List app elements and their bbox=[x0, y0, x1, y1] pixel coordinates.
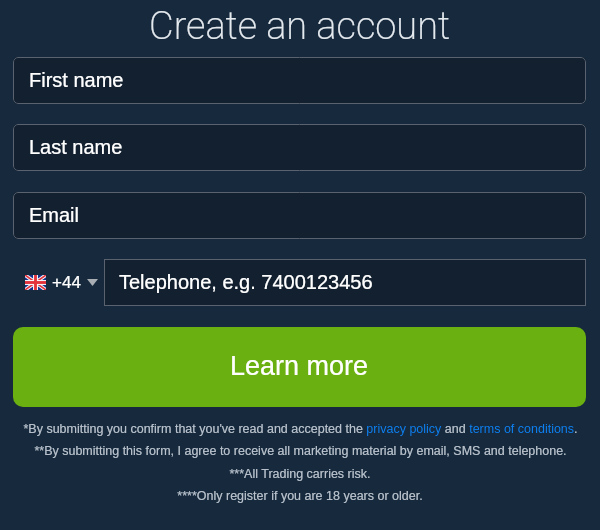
staticText: Telephone, e.g. 7400123456 bbox=[119, 271, 373, 293]
staticText: Email bbox=[29, 204, 80, 226]
staticText: *By submitting you confirm that you've r… bbox=[23, 422, 578, 436]
staticText: ***All Trading carries risk. bbox=[229, 467, 371, 481]
button[interactable]: Telephone, e.g. 7400123456 bbox=[104, 259, 586, 306]
staticText: Last name bbox=[29, 136, 123, 158]
staticText: Learn more bbox=[230, 351, 369, 381]
staticText: First name bbox=[29, 69, 124, 91]
staticText: +44 bbox=[52, 273, 81, 292]
staticText: ****Only register if you are 18 years or… bbox=[177, 489, 423, 503]
button[interactable]: Select country code, United Kingdom +44 bbox=[0, 259, 104, 306]
button[interactable]: Email bbox=[13, 192, 586, 239]
button[interactable]: First name bbox=[13, 57, 586, 104]
staticText: Create an account bbox=[149, 4, 451, 49]
button[interactable]: Last name bbox=[13, 124, 586, 171]
button[interactable]: Learn more bbox=[13, 327, 586, 407]
staticText: **By submitting this form, I agree to re… bbox=[34, 444, 567, 458]
